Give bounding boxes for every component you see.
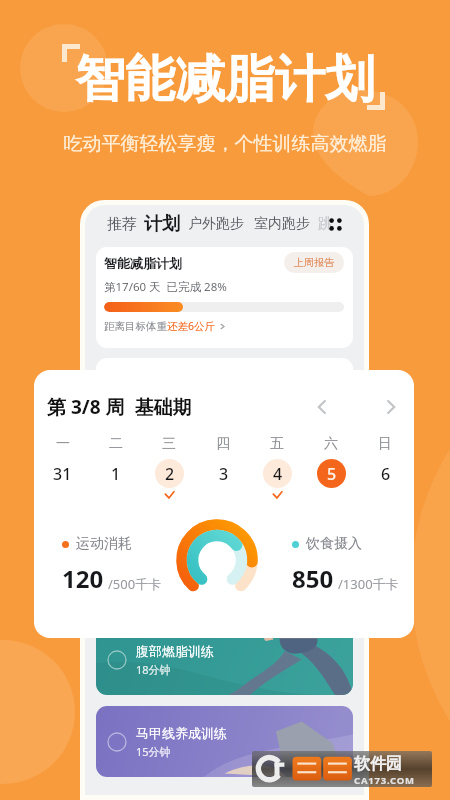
button[interactable]: More tabs bbox=[326, 215, 344, 233]
staticText: 1 bbox=[111, 463, 121, 485]
staticText: 吃动平衡轻松享瘦，个性训练高效燃脂 bbox=[0, 132, 450, 156]
button[interactable]: 户外跑步 bbox=[188, 215, 244, 233]
staticText: 31 bbox=[53, 463, 72, 485]
staticText: 四 bbox=[216, 435, 230, 453]
staticText: 第 3/8 周 基础期 bbox=[47, 394, 192, 420]
staticText: 18分钟 bbox=[136, 662, 171, 677]
button[interactable]: 马甲线养成训练 bbox=[96, 706, 353, 777]
button[interactable]: 推荐 bbox=[107, 215, 137, 234]
button[interactable]: 一 bbox=[36, 435, 89, 501]
staticText: 850 bbox=[292, 562, 334, 595]
button[interactable]: 二 bbox=[89, 435, 142, 501]
button[interactable]: 计划 bbox=[144, 213, 180, 236]
staticText: 腹部燃脂训练 bbox=[136, 643, 214, 659]
staticText: 饮食摄入 bbox=[306, 535, 362, 553]
button[interactable]: 智能减脂计划 bbox=[96, 247, 353, 348]
button[interactable]: Next week bbox=[376, 392, 406, 422]
staticText: /1300千卡 bbox=[338, 575, 399, 593]
staticText: 三 bbox=[162, 435, 176, 453]
staticText: 120 bbox=[62, 562, 104, 595]
staticText: 2 bbox=[165, 463, 175, 485]
button[interactable]: 腹部燃脂训练 bbox=[96, 624, 353, 695]
staticText: 日 bbox=[378, 435, 392, 453]
button[interactable]: 室内跑步 bbox=[254, 215, 310, 233]
staticText: 4 bbox=[273, 463, 283, 485]
staticText: 3 bbox=[219, 463, 229, 485]
staticText: 马甲线养成训练 bbox=[136, 725, 227, 741]
staticText: 5 bbox=[327, 463, 337, 485]
staticText: 6 bbox=[381, 463, 391, 485]
button[interactable]: 日 bbox=[358, 435, 412, 501]
button[interactable]: Previous week bbox=[307, 392, 337, 422]
staticText: 上周报告 bbox=[294, 256, 334, 269]
staticText: 软件园 bbox=[354, 754, 402, 774]
staticText: 一 bbox=[56, 435, 70, 453]
staticText: 跳 bbox=[318, 215, 332, 233]
staticText: 二 bbox=[109, 435, 123, 453]
button[interactable]: 三 bbox=[142, 435, 196, 501]
button[interactable]: 五 bbox=[250, 435, 304, 501]
staticText: 15分钟 bbox=[136, 744, 171, 759]
staticText: CA173.COM bbox=[354, 774, 415, 787]
button[interactable]: 六 bbox=[304, 435, 358, 501]
staticText: 智能减脂计划 bbox=[104, 255, 182, 271]
button[interactable]: 上周报告 bbox=[284, 252, 344, 273]
staticText: 六 bbox=[324, 435, 338, 453]
button[interactable]: 四 bbox=[196, 435, 250, 501]
staticText: 智能减脂计划 bbox=[0, 48, 450, 111]
staticText: 运动消耗 bbox=[76, 535, 132, 553]
staticText: 距离目标体重 bbox=[104, 320, 167, 333]
staticText: /500千卡 bbox=[108, 575, 162, 593]
staticText: 还差6公斤 bbox=[167, 319, 216, 333]
staticText: 第17/60 天 已完成 28% bbox=[104, 279, 227, 295]
staticText: 五 bbox=[270, 435, 284, 453]
